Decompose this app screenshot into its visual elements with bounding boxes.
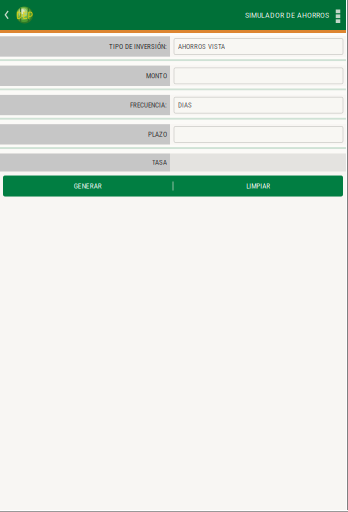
staticText: TASA (152, 158, 167, 166)
staticText: TIPO DE INVERSIÓN: (109, 42, 167, 51)
staticText: GENERAR (74, 182, 102, 190)
staticText: SIMULADOR DE AHORROS (245, 10, 329, 20)
staticText: LIMPIAR (246, 182, 270, 190)
staticText: DEP (16, 10, 32, 21)
staticText: PLAZO (148, 130, 167, 138)
staticText: AHORROS VISTA (178, 42, 225, 51)
button[interactable]: LIMPIAR (173, 175, 343, 196)
staticText: DIAS (178, 101, 192, 109)
staticText: FRECUENCIA: (130, 101, 167, 109)
staticText: MONTO (146, 72, 167, 80)
button[interactable]: More options (333, 0, 343, 30)
button[interactable]: Back (0, 0, 16, 29)
button[interactable]: GENERAR (3, 175, 172, 196)
